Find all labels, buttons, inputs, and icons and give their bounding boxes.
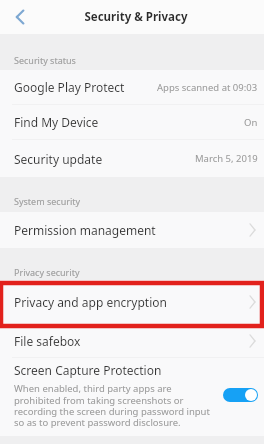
staticText: System security <box>14 195 81 207</box>
staticText: When enabled, third party apps are prohi… <box>14 382 212 429</box>
button[interactable]: Screen Capture Protection toggle <box>223 388 258 402</box>
button[interactable]: Screen Capture Protection <box>0 358 264 436</box>
staticText: File safebox <box>14 333 81 349</box>
button[interactable]: Security update <box>0 140 264 177</box>
staticText: Find My Device <box>14 114 99 130</box>
staticText: Security status <box>14 54 76 66</box>
staticText: On <box>244 116 258 129</box>
staticText: Privacy and app encryption <box>14 294 167 310</box>
button[interactable]: Back <box>0 0 34 34</box>
staticText: Privacy security <box>14 266 80 278</box>
button[interactable]: Permission management <box>0 212 264 248</box>
staticText: Security update <box>14 151 103 167</box>
staticText: Security & Privacy <box>84 9 188 25</box>
staticText: Permission management <box>14 222 156 238</box>
staticText: Screen Capture Protection <box>14 362 162 378</box>
staticText: Google Play Protect <box>14 79 125 95</box>
staticText: March 5, 2019 <box>195 152 258 165</box>
button[interactable]: Google Play Protect <box>0 70 264 104</box>
staticText: Apps scanned at 09:03 <box>157 81 258 94</box>
button[interactable]: Find My Device <box>0 105 264 139</box>
button[interactable]: File safebox <box>0 324 264 357</box>
button[interactable]: Privacy and app encryption <box>0 280 264 324</box>
